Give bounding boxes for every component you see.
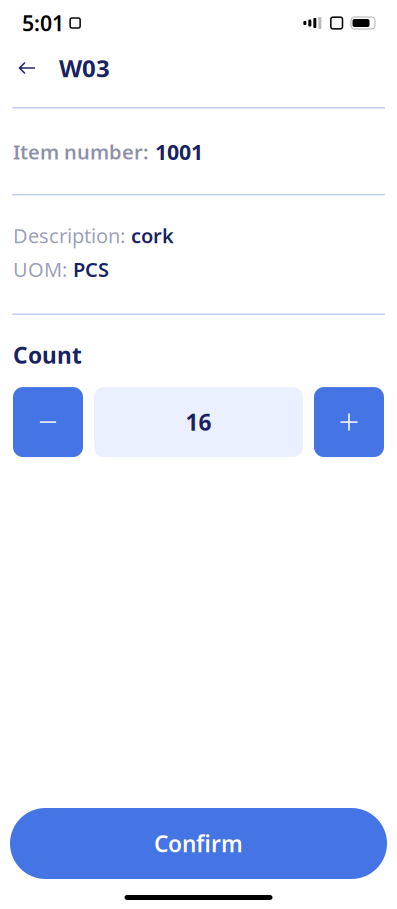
staticText: W03 xyxy=(59,52,110,84)
button[interactable]: Confirm xyxy=(10,808,387,879)
staticText: Description: xyxy=(13,222,125,249)
staticText: 5:01 xyxy=(22,9,64,37)
staticText: Confirm xyxy=(154,828,243,858)
staticText: Item number: xyxy=(13,138,149,165)
button[interactable]: Decrease count xyxy=(13,387,83,457)
staticText: 1001 xyxy=(155,137,203,166)
button[interactable]: Back xyxy=(5,48,49,88)
staticText: UOM: xyxy=(13,256,67,282)
staticText: 16 xyxy=(185,407,211,437)
button[interactable]: Increase count xyxy=(314,387,384,457)
staticText: PCS xyxy=(73,256,109,282)
staticText: cork xyxy=(131,222,174,249)
staticText: Count xyxy=(13,340,82,370)
